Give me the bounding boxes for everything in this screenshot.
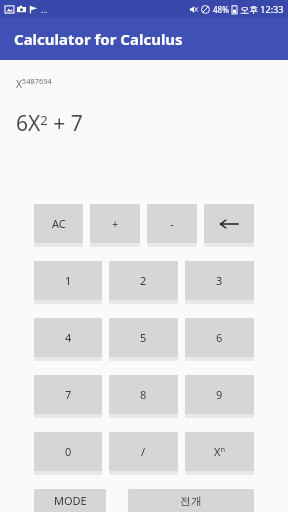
staticText: 0 bbox=[65, 444, 72, 459]
button[interactable]: 4 bbox=[34, 318, 102, 357]
staticText: Calculator for Calculus bbox=[14, 29, 183, 49]
button[interactable]: 6 bbox=[185, 318, 254, 357]
staticText: 6 bbox=[216, 330, 223, 345]
button[interactable]: / bbox=[109, 432, 178, 471]
button[interactable]: - bbox=[147, 204, 197, 243]
staticText: / bbox=[141, 444, 146, 459]
staticText: - bbox=[170, 216, 174, 231]
staticText: AC bbox=[52, 216, 66, 231]
button[interactable]: Backspace bbox=[204, 204, 254, 243]
button[interactable]: Xn bbox=[185, 432, 254, 471]
staticText: ... bbox=[41, 4, 48, 15]
button[interactable]: AC bbox=[34, 204, 83, 243]
staticText: 9 bbox=[216, 387, 223, 402]
button[interactable]: 3 bbox=[185, 261, 254, 300]
staticText: 7 bbox=[65, 387, 72, 402]
button[interactable]: 1 bbox=[34, 261, 102, 300]
button[interactable]: + bbox=[90, 204, 140, 243]
staticText: 2 bbox=[140, 273, 147, 288]
staticText: X5487694 bbox=[16, 76, 52, 91]
staticText: 3 bbox=[216, 273, 223, 288]
button[interactable]: MODE bbox=[34, 489, 106, 512]
staticText: Xn bbox=[214, 444, 226, 459]
button[interactable]: 7 bbox=[34, 375, 102, 414]
staticText: 오후 12:33 bbox=[240, 3, 284, 15]
staticText: + bbox=[112, 216, 119, 231]
staticText: MODE bbox=[54, 493, 87, 508]
button[interactable]: 5 bbox=[109, 318, 178, 357]
button[interactable]: 0 bbox=[34, 432, 102, 471]
staticText: 전개 bbox=[180, 494, 202, 508]
staticText: 8 bbox=[140, 387, 147, 402]
staticText: 1 bbox=[65, 273, 72, 288]
staticText: 6X2 + 7 bbox=[16, 109, 83, 138]
button[interactable]: 전개 bbox=[128, 489, 254, 512]
button[interactable]: 9 bbox=[185, 375, 254, 414]
button[interactable]: 2 bbox=[109, 261, 178, 300]
staticText: 48% bbox=[213, 4, 229, 15]
staticText: 4 bbox=[65, 330, 72, 345]
staticText: 5 bbox=[140, 330, 147, 345]
button[interactable]: 8 bbox=[109, 375, 178, 414]
